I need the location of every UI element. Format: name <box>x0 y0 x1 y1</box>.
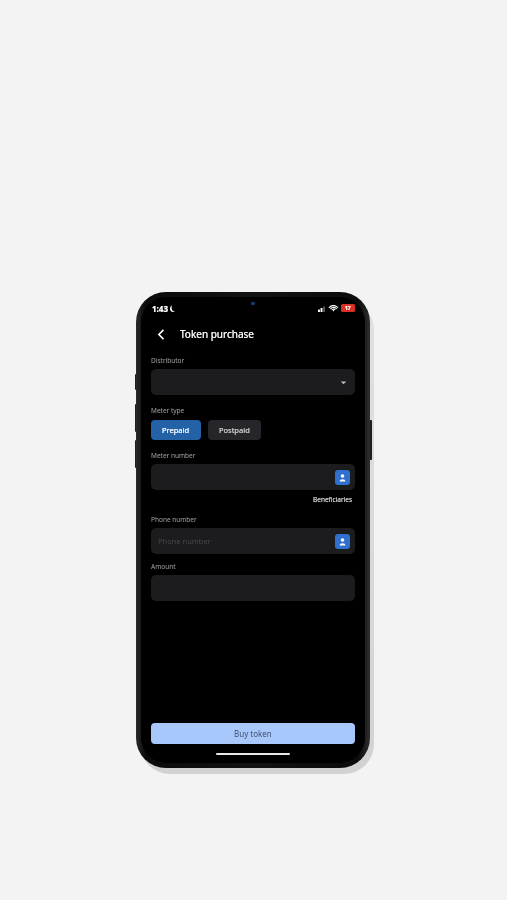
staticText: Phone number <box>151 515 197 524</box>
button[interactable]: Choose contact <box>335 470 350 485</box>
staticText: Phone number <box>158 536 211 546</box>
staticText: Amount <box>151 562 176 571</box>
button[interactable]: Beneficiaries <box>311 494 355 505</box>
staticText: Buy token <box>234 728 272 739</box>
button[interactable]: Back <box>149 322 173 346</box>
button[interactable]: Buy token <box>151 723 355 744</box>
staticText: 17 <box>345 305 351 312</box>
button[interactable]: Choose contact <box>335 534 350 549</box>
staticText: Meter number <box>151 451 196 460</box>
staticText: Postpaid <box>219 425 250 435</box>
staticText: Token purchase <box>180 327 254 341</box>
button[interactable] <box>151 369 355 395</box>
button[interactable]: Choose contact <box>151 464 355 490</box>
staticText: Meter type <box>151 406 185 415</box>
staticText: Beneficiaries <box>313 495 353 504</box>
button[interactable]: Postpaid <box>208 420 261 440</box>
button[interactable]: Prepaid <box>151 420 201 440</box>
staticText: Prepaid <box>162 425 190 435</box>
button[interactable]: Phone number <box>151 528 355 554</box>
staticText: Distributor <box>151 356 185 365</box>
staticText: 1:43 <box>152 303 168 314</box>
